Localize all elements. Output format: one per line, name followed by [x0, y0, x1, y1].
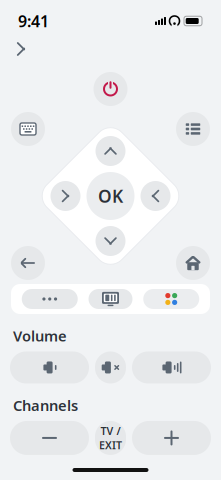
staticText: Volume [13, 326, 67, 345]
staticText: TV / [100, 424, 120, 438]
button[interactable]: Home [176, 246, 210, 280]
button[interactable]: Apps [143, 289, 199, 309]
button[interactable]: Up [95, 136, 125, 166]
staticText: EXIT [99, 438, 122, 452]
button[interactable]: Volume up [132, 351, 211, 383]
button[interactable]: Back [8, 36, 34, 62]
button[interactable]: More [22, 289, 78, 309]
button[interactable]: Keyboard [11, 112, 45, 146]
button[interactable]: Mute [95, 351, 126, 383]
button[interactable]: Down [95, 226, 125, 256]
button[interactable]: Channel down [10, 421, 89, 455]
button[interactable]: Guide [176, 112, 210, 146]
button[interactable]: Left [50, 181, 80, 211]
staticText: OK [98, 184, 123, 207]
button[interactable]: Power [93, 72, 127, 106]
button[interactable]: Volume down [10, 351, 89, 383]
button[interactable]: OK [86, 172, 134, 220]
button[interactable]: Back [11, 246, 45, 280]
staticText: Channels [13, 395, 78, 415]
button[interactable]: Channel up [132, 421, 211, 455]
staticText: 9:41 [18, 10, 49, 32]
button[interactable]: Right [140, 181, 170, 211]
button[interactable]: TV / Exit [95, 421, 126, 455]
button[interactable]: Source [88, 289, 132, 309]
